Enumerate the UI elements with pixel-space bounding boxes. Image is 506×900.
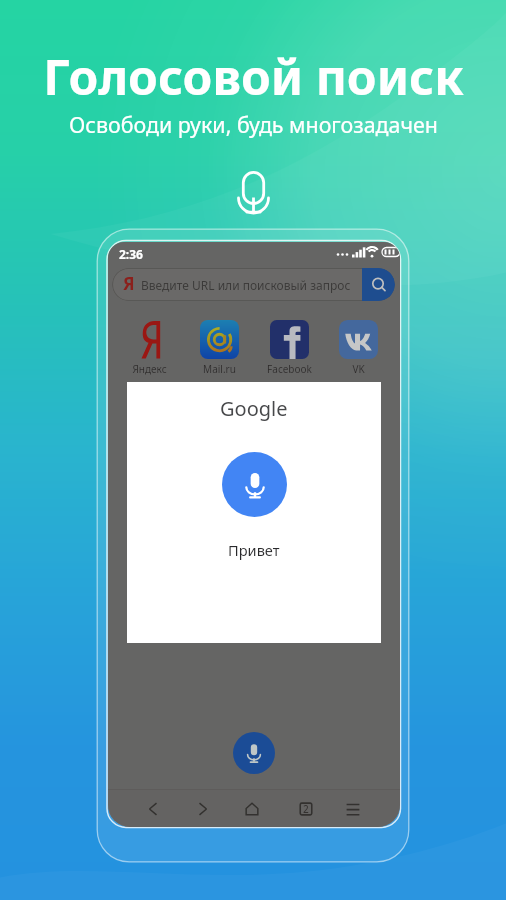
button[interactable]: Яндекс [119, 320, 179, 376]
staticText: VK [352, 362, 365, 376]
button[interactable]: Voice search [222, 452, 287, 517]
staticText: Голосовой поиск [43, 44, 464, 109]
button[interactable]: Search [362, 268, 395, 301]
staticText: Привет [228, 540, 280, 560]
staticText: Введите URL или поисковый запрос [141, 277, 351, 293]
staticText: Google [220, 395, 288, 422]
button[interactable]: Menu [344, 799, 362, 818]
staticText: Facebook [267, 362, 312, 376]
button[interactable]: Voice search [233, 732, 275, 774]
staticText: Я [123, 272, 135, 295]
button[interactable]: Tabs [297, 799, 315, 818]
staticText: 2 [303, 802, 309, 816]
staticText: Mail.ru [203, 362, 236, 376]
button[interactable]: Я [112, 268, 395, 301]
staticText: Яндекс [132, 362, 167, 376]
staticText: Освободи руки, будь многозадачен [69, 110, 438, 139]
button[interactable]: Facebook [259, 320, 319, 376]
button[interactable]: Mail.ru [189, 320, 249, 376]
button[interactable]: VK [328, 320, 388, 376]
button[interactable]: Home [243, 799, 261, 818]
button[interactable]: Back [144, 799, 162, 818]
button[interactable]: Forward [194, 799, 212, 818]
staticText: 2:36 [119, 246, 143, 262]
